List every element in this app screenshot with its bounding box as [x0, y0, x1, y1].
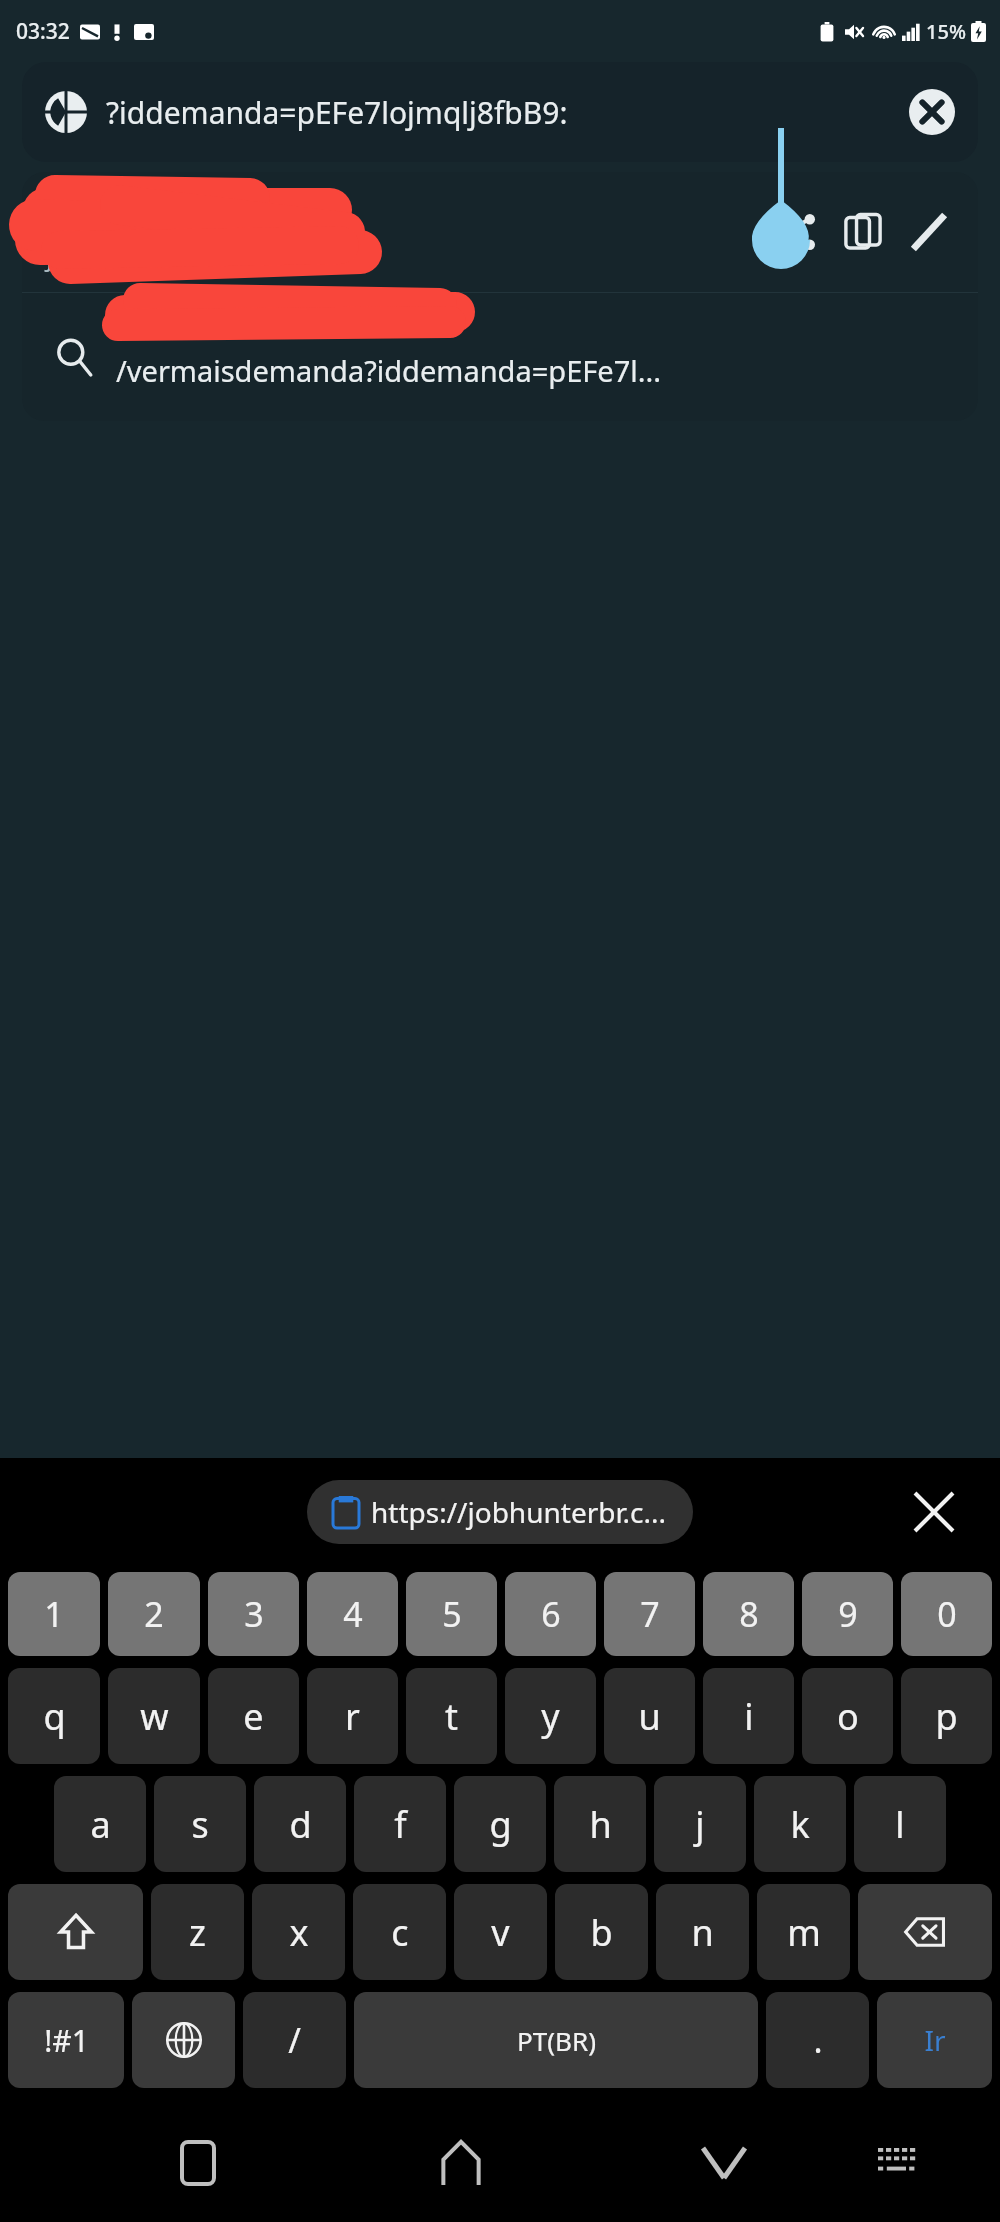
button[interactable]: Change language: [132, 1992, 235, 2088]
button[interactable]: 6: [505, 1572, 596, 1656]
staticText: x: [289, 1908, 309, 1957]
button[interactable]: e: [208, 1668, 299, 1764]
button[interactable]: /: [243, 1992, 346, 2088]
button[interactable]: v: [454, 1884, 547, 1980]
staticText: 1: [44, 1591, 64, 1637]
button[interactable]: Backspace: [858, 1884, 992, 1980]
button[interactable]: m: [757, 1884, 850, 1980]
staticText: ?iddemanda=pEFe7lojmqlj8fbB9:: [106, 92, 896, 133]
button[interactable]: r: [307, 1668, 398, 1764]
button[interactable]: 0: [901, 1572, 992, 1656]
staticText: a: [90, 1800, 111, 1849]
button[interactable]: Ir: [877, 1992, 992, 2088]
staticText: k: [790, 1800, 810, 1849]
button[interactable]: 7: [604, 1572, 695, 1656]
button[interactable]: Recent apps: [156, 2121, 240, 2205]
staticText: p: [935, 1692, 958, 1741]
button[interactable]: s: [154, 1776, 246, 1872]
button[interactable]: o: [802, 1668, 893, 1764]
button[interactable]: n: [656, 1884, 749, 1980]
button[interactable]: a: [54, 1776, 146, 1872]
staticText: v: [491, 1908, 510, 1957]
button[interactable]: k: [754, 1776, 846, 1872]
staticText: t: [445, 1692, 458, 1741]
button[interactable]: 3: [208, 1572, 299, 1656]
button[interactable]: Hide keyboard: [682, 2121, 766, 2205]
staticText: /vermaisdemanda?iddemanda=pEFe7l...: [116, 351, 662, 390]
button[interactable]: https://jobhunterbr.c...: [307, 1480, 693, 1544]
button[interactable]: p: [901, 1668, 992, 1764]
staticText: /: [288, 2017, 301, 2063]
button[interactable]: Switch keyboard: [856, 2121, 940, 2205]
button[interactable]: 1: [8, 1572, 100, 1656]
button[interactable]: hunter: [22, 172, 978, 292]
staticText: 0: [937, 1591, 957, 1637]
staticText: 15%: [926, 18, 966, 45]
staticText: 9: [838, 1591, 858, 1637]
button[interactable]: Site information: [22, 62, 978, 162]
staticText: w: [140, 1692, 169, 1741]
button[interactable]: 5: [406, 1572, 497, 1656]
button[interactable]: 2: [108, 1572, 200, 1656]
staticText: b: [590, 1908, 613, 1957]
staticText: 6: [541, 1591, 561, 1637]
button[interactable]: u: [604, 1668, 695, 1764]
button[interactable]: x: [252, 1884, 345, 1980]
button[interactable]: y: [505, 1668, 596, 1764]
button[interactable]: Close suggestion: [904, 1482, 964, 1542]
staticText: 4: [343, 1591, 363, 1637]
button[interactable]: 4: [307, 1572, 398, 1656]
staticText: y: [541, 1692, 560, 1741]
staticText: g: [489, 1800, 512, 1849]
staticText: PT(BR): [517, 2023, 596, 2058]
staticText: 5: [442, 1591, 462, 1637]
button[interactable]: h: [554, 1776, 646, 1872]
button[interactable]: l: [854, 1776, 946, 1872]
staticText: https://jobhunterbr.c...: [371, 1493, 667, 1531]
staticText: o: [837, 1692, 859, 1741]
staticText: c: [391, 1908, 409, 1957]
button[interactable]: q: [8, 1668, 100, 1764]
staticText: j: [695, 1800, 705, 1849]
button[interactable]: 8: [703, 1572, 794, 1656]
staticText: l: [895, 1800, 905, 1849]
button[interactable]: z: [151, 1884, 244, 1980]
staticText: m: [787, 1908, 821, 1957]
button[interactable]: j: [654, 1776, 746, 1872]
button[interactable]: g: [454, 1776, 546, 1872]
button[interactable]: Share: [764, 199, 830, 265]
staticText: r: [345, 1692, 360, 1741]
staticText: u: [638, 1692, 661, 1741]
button[interactable]: PT(BR): [354, 1992, 758, 2088]
button[interactable]: f: [354, 1776, 446, 1872]
button[interactable]: w: [108, 1668, 200, 1764]
button[interactable]: Home: [419, 2121, 503, 2205]
button[interactable]: !#1: [8, 1992, 124, 2088]
button[interactable]: Copy: [830, 199, 896, 265]
button[interactable]: .: [766, 1992, 869, 2088]
staticText: !#1: [44, 2020, 89, 2061]
staticText: 2: [144, 1591, 164, 1637]
button[interactable]: /vermaisdemanda?iddemanda=pEFe7l...: [22, 293, 978, 421]
staticText: 03:32: [16, 17, 70, 46]
staticText: q: [43, 1692, 66, 1741]
staticText: 3: [244, 1591, 264, 1637]
button[interactable]: i: [703, 1668, 794, 1764]
button[interactable]: 9: [802, 1572, 893, 1656]
staticText: e: [243, 1692, 264, 1741]
button[interactable]: Clear text: [904, 84, 960, 140]
staticText: s: [191, 1800, 209, 1849]
button[interactable]: Shift: [8, 1884, 143, 1980]
staticText: z: [189, 1908, 206, 1957]
button[interactable]: c: [353, 1884, 446, 1980]
button[interactable]: d: [254, 1776, 346, 1872]
button[interactable]: b: [555, 1884, 648, 1980]
staticText: d: [289, 1800, 312, 1849]
staticText: Ir: [924, 2021, 946, 2059]
button[interactable]: t: [406, 1668, 497, 1764]
staticText: .: [813, 2017, 823, 2063]
button[interactable]: Edit: [896, 199, 962, 265]
button[interactable]: Site information: [40, 86, 92, 138]
staticText: jobhunterbr.c...: [46, 238, 231, 273]
staticText: 7: [640, 1591, 660, 1637]
